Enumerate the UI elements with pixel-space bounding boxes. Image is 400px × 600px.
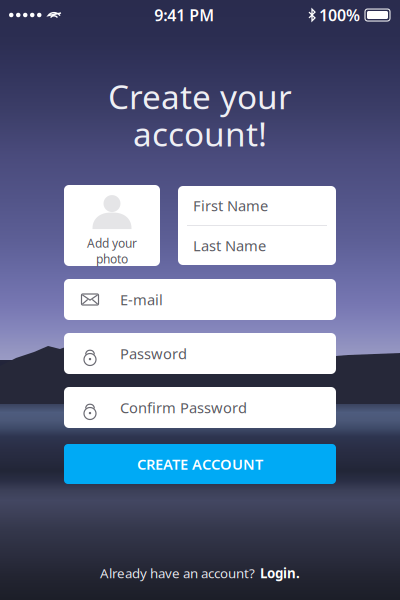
button[interactable]: First Name xyxy=(178,186,336,225)
staticText: Create your xyxy=(108,74,292,118)
staticText: Login. xyxy=(260,564,300,582)
staticText: Last Name xyxy=(193,236,266,255)
button[interactable]: Login. xyxy=(260,564,300,582)
staticText: photo xyxy=(96,251,128,267)
staticText: First Name xyxy=(193,196,268,215)
button[interactable]: Password xyxy=(64,333,336,374)
staticText: Add your xyxy=(87,235,137,251)
button[interactable]: Add your xyxy=(64,185,160,266)
button[interactable]: Last Name xyxy=(178,226,336,265)
staticText: 100% xyxy=(319,4,360,26)
button[interactable]: E-mail xyxy=(64,279,336,320)
staticText: Already have an account? xyxy=(100,564,255,582)
button[interactable]: CREATE ACCOUNT xyxy=(64,444,336,484)
staticText: 9:41 PM xyxy=(154,4,214,26)
staticText: CREATE ACCOUNT xyxy=(137,454,263,474)
button[interactable]: Confirm Password xyxy=(64,387,336,428)
staticText: Confirm Password xyxy=(120,398,247,417)
staticText: E-mail xyxy=(120,290,163,309)
staticText: Password xyxy=(120,344,187,363)
staticText: account! xyxy=(133,111,267,156)
